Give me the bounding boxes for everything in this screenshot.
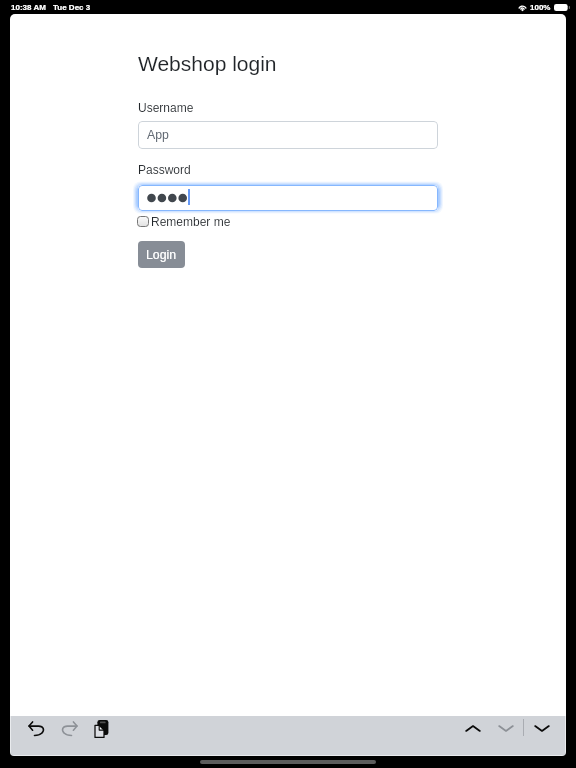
button[interactable]: Undo	[25, 717, 47, 739]
staticText: Tue Dec 3	[53, 3, 91, 12]
staticText: 10:38 AM	[11, 3, 46, 12]
staticText: Password	[138, 163, 191, 176]
staticText: Login	[146, 248, 177, 262]
staticText: App	[147, 128, 169, 142]
button[interactable]: Previous field	[462, 717, 484, 739]
button[interactable]: Paste	[94, 720, 108, 738]
button[interactable]: Next field	[495, 717, 517, 739]
button[interactable]	[138, 185, 438, 211]
button[interactable]: Remember me	[137, 215, 231, 228]
button[interactable]: Redo	[58, 717, 80, 739]
button[interactable]: Login	[138, 241, 185, 268]
button[interactable]: Hide keyboard	[531, 717, 553, 739]
button[interactable]: App	[138, 121, 438, 149]
staticText: Remember me	[151, 215, 231, 228]
staticText: 100%	[530, 3, 551, 12]
staticText: Webshop login	[138, 52, 277, 75]
staticText: Username	[138, 101, 194, 114]
